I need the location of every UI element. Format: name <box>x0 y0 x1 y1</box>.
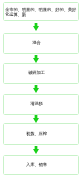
staticText: 清洗脱 <box>30 101 43 106</box>
button[interactable]: 全市的、明显的、明显的、好的、美好 <box>3 2 79 21</box>
button[interactable]: 初炼、压榨 <box>3 123 79 145</box>
button[interactable]: 混合 <box>3 33 79 54</box>
staticText: 入库、销售 <box>26 162 47 167</box>
staticText: 混合 <box>32 40 41 45</box>
staticText: 化运算、新 <box>5 12 26 17</box>
button[interactable]: 清洗脱 <box>3 94 79 115</box>
staticText: 全市的、明显的、明显的、好的、美好 <box>5 7 77 12</box>
staticText: 破碎加工 <box>28 70 45 75</box>
button[interactable]: 入库、销售 <box>3 155 79 175</box>
staticText: 初炼、压榨 <box>26 131 47 136</box>
button[interactable]: 破碎加工 <box>3 63 79 84</box>
